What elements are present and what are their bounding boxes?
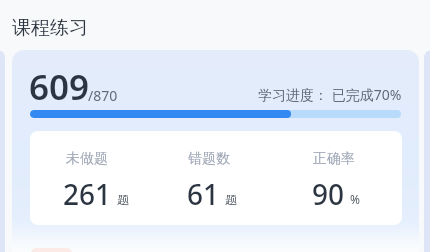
button[interactable]: 609	[12, 50, 419, 252]
staticText: %	[350, 191, 360, 207]
staticText: 90	[312, 175, 345, 213]
staticText: 正确率	[313, 150, 355, 168]
staticText: 609	[29, 63, 90, 111]
staticText: 错题数	[188, 150, 230, 168]
staticText: 题	[225, 192, 237, 207]
staticText: 261	[63, 175, 112, 213]
staticText: 学习进度： 已完成70%	[258, 85, 402, 104]
staticText: /870	[88, 86, 118, 105]
staticText: 题	[117, 192, 129, 207]
staticText: 61	[187, 175, 220, 213]
staticText: 未做题	[66, 150, 108, 168]
staticText: 课程练习	[12, 16, 88, 40]
